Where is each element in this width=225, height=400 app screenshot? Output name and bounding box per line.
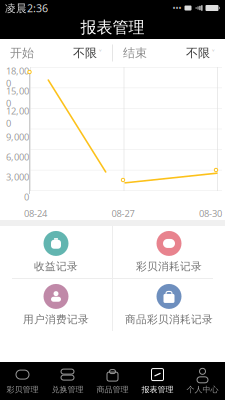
staticText: 0 <box>24 191 29 203</box>
staticText: 不限 <box>186 46 210 60</box>
staticText: 商品管理 <box>96 385 128 394</box>
staticText: ˅ <box>97 47 102 59</box>
button[interactable]: 彩贝消耗记录 <box>113 226 225 278</box>
staticText: ˅ <box>210 47 215 59</box>
staticText: 15,000 <box>6 85 29 109</box>
staticText: 开始 <box>10 46 34 60</box>
staticText: 9,000 <box>6 131 29 143</box>
staticText: 08-24 <box>24 207 47 220</box>
staticText: 商品彩贝消耗记录 <box>125 313 213 326</box>
button[interactable]: 商品管理 <box>90 362 135 400</box>
staticText: 6,000 <box>6 151 29 163</box>
button[interactable]: 结束 <box>113 39 225 67</box>
staticText: 12,000 <box>6 105 29 129</box>
button[interactable]: 收益记录 <box>0 226 112 278</box>
staticText: 报表管理 <box>80 18 144 37</box>
staticText: 用户消费记录 <box>23 313 89 326</box>
staticText: 凌晨2:36 <box>5 1 48 15</box>
staticText: 兑换管理 <box>51 385 83 394</box>
button[interactable]: 商品彩贝消耗记录 <box>113 279 225 331</box>
button[interactable]: 彩贝管理 <box>0 362 45 400</box>
staticText: 不限 <box>73 46 97 60</box>
staticText: 结束 <box>123 46 147 60</box>
staticText: 收益记录 <box>34 260 78 273</box>
staticText: 08-30 <box>199 207 222 220</box>
staticText: 彩贝消耗记录 <box>136 260 202 273</box>
staticText: 报表管理 <box>141 385 173 394</box>
button[interactable]: 报表管理 <box>135 362 180 400</box>
staticText: 3,000 <box>6 171 29 183</box>
button[interactable]: 兑换管理 <box>45 362 90 400</box>
button[interactable]: 开始 <box>0 39 112 67</box>
button[interactable]: 用户消费记录 <box>0 279 112 331</box>
button[interactable]: 个人中心 <box>180 362 225 400</box>
staticText: 18,000 <box>6 65 29 89</box>
staticText: 个人中心 <box>186 385 218 394</box>
staticText: 彩贝管理 <box>6 385 38 394</box>
staticText: 08-27 <box>111 207 134 220</box>
staticText: ••• <box>172 3 181 13</box>
